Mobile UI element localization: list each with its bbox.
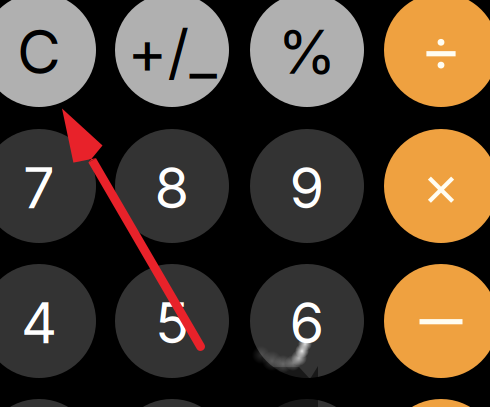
button[interactable]: Divide <box>384 0 490 107</box>
button[interactable]: Eight <box>115 129 229 243</box>
staticText: +/_ <box>127 16 216 88</box>
button[interactable]: Multiply <box>384 129 490 243</box>
button[interactable]: Percent <box>250 0 364 107</box>
button[interactable]: Toggle sign <box>115 0 229 107</box>
button[interactable]: Subtract <box>384 264 490 378</box>
button[interactable]: Six <box>250 264 364 378</box>
staticText: 4 <box>21 289 57 357</box>
staticText: 8 <box>154 154 189 222</box>
staticText: 6 <box>289 289 324 357</box>
button[interactable]: Five <box>115 264 229 378</box>
button[interactable]: Seven <box>0 129 96 243</box>
staticText: C <box>17 16 61 88</box>
staticText: 9 <box>289 154 324 222</box>
staticText: % <box>277 16 336 88</box>
button[interactable]: Three <box>250 399 364 407</box>
staticText: 7 <box>23 154 55 222</box>
button[interactable]: Four <box>0 264 96 378</box>
staticText: 5 <box>155 289 189 357</box>
button[interactable]: Clear <box>0 0 96 107</box>
button[interactable]: Two <box>115 399 229 407</box>
button[interactable]: Add <box>384 399 490 407</box>
button[interactable]: One <box>0 399 96 407</box>
button[interactable]: Nine <box>250 129 364 243</box>
